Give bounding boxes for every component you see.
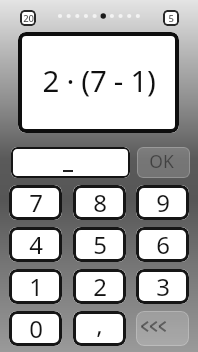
staticText: 2: [93, 270, 107, 303]
button[interactable]: 2: [73, 269, 126, 304]
staticText: 5: [168, 12, 174, 25]
button[interactable]: 8: [73, 185, 126, 220]
staticText: 6: [156, 228, 170, 261]
staticText: 8: [93, 186, 107, 219]
button[interactable]: 20: [20, 10, 36, 26]
staticText: OK: [149, 149, 174, 173]
button[interactable]: 9: [136, 185, 189, 220]
button[interactable]: 4: [9, 227, 62, 262]
button[interactable]: 5: [73, 227, 126, 262]
button[interactable]: 5: [163, 10, 179, 26]
staticText: 9: [156, 186, 170, 219]
staticText: 20: [23, 12, 34, 25]
button[interactable]: [11, 147, 130, 178]
button[interactable]: [136, 311, 189, 346]
staticText: 1: [29, 270, 43, 303]
staticText: 2 · (7 - 1): [42, 60, 156, 100]
staticText: ,: [96, 311, 103, 341]
button[interactable]: ,: [73, 311, 126, 346]
button[interactable]: 7: [9, 185, 62, 220]
button[interactable]: 0: [9, 311, 62, 346]
button[interactable]: 3: [136, 269, 189, 304]
staticText: 5: [93, 228, 107, 261]
staticText: 0: [29, 312, 43, 345]
staticText: 7: [29, 186, 43, 219]
button[interactable]: 6: [136, 227, 189, 262]
staticText: 3: [156, 270, 170, 303]
button[interactable]: OK: [137, 147, 190, 178]
staticText: 4: [29, 228, 43, 261]
button[interactable]: 1: [9, 269, 62, 304]
